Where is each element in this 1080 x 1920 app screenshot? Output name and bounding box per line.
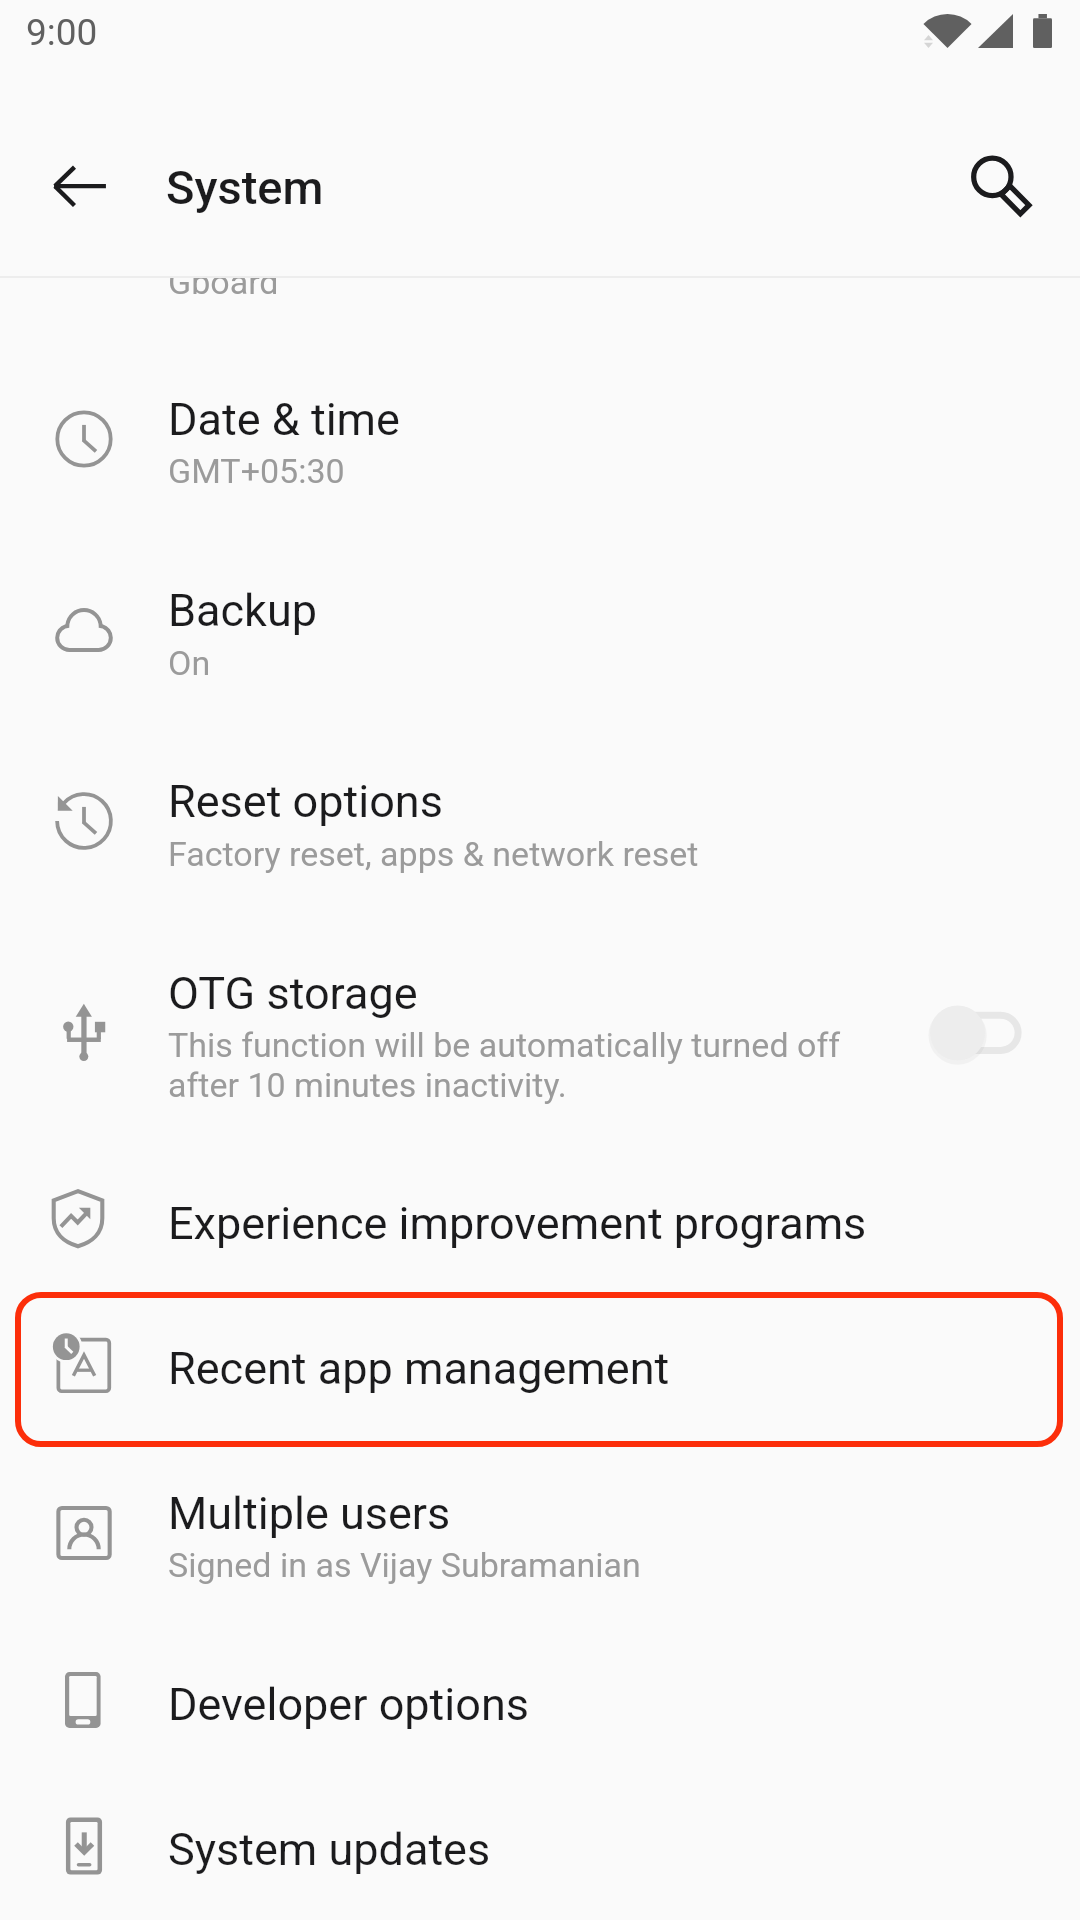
button[interactable] (0, 1451, 1080, 1601)
staticText: System updates (168, 1823, 491, 1876)
button[interactable] (0, 1306, 1080, 1416)
staticText: On (168, 643, 211, 683)
button[interactable]: OTG storage (918, 994, 1034, 1072)
button[interactable]: Back (28, 135, 132, 239)
button[interactable] (0, 1642, 1080, 1752)
staticText: GMT+05:30 (168, 451, 345, 491)
button[interactable]: Search (948, 133, 1052, 237)
button[interactable] (0, 1787, 1080, 1897)
staticText: Backup (168, 584, 317, 637)
staticText: Experience improvement programs (168, 1197, 867, 1250)
staticText: Date & time (168, 393, 400, 446)
staticText: This function will be automatically turn… (168, 1025, 841, 1105)
staticText: OTG storage (168, 967, 418, 1020)
button[interactable] (0, 548, 1080, 698)
staticText: Factory reset, apps & network reset (168, 834, 699, 874)
button[interactable] (0, 357, 1080, 507)
staticText: System (166, 160, 324, 215)
button[interactable] (0, 739, 1080, 889)
staticText: Signed in as Vijay Subramanian (168, 1545, 641, 1585)
button[interactable] (0, 1161, 1080, 1271)
staticText: Reset options (168, 775, 443, 828)
staticText: Multiple users (168, 1487, 451, 1540)
staticText: Developer options (168, 1678, 529, 1731)
staticText: Recent app management (168, 1342, 670, 1395)
staticText: 9:00 (26, 11, 98, 54)
staticText: Gboard (168, 277, 279, 302)
button[interactable] (0, 931, 1080, 1081)
